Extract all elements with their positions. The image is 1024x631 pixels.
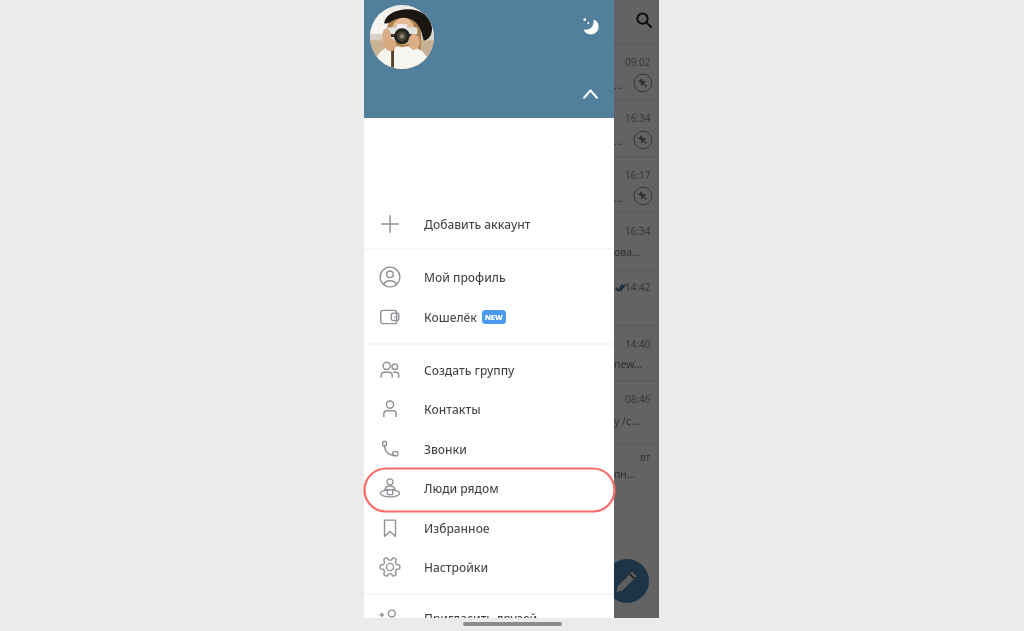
button[interactable]: Expand accounts (572, 76, 608, 112)
staticText: Создать группу (424, 362, 515, 378)
staticText: 16:34 (625, 111, 651, 125)
staticText: Люди рядом (424, 480, 499, 496)
button[interactable]: Звонки (364, 429, 614, 469)
staticText: NEW (485, 312, 503, 322)
button[interactable]: Добавить аккаунт (364, 204, 614, 244)
staticText: 08:46 (625, 392, 651, 406)
staticText: вт (640, 450, 651, 464)
staticText: у /с… (614, 414, 640, 428)
staticText: пн… (614, 467, 636, 481)
button[interactable]: New message (605, 559, 649, 603)
button[interactable]: Создать группу (364, 350, 614, 390)
staticText: … (614, 191, 623, 205)
button[interactable]: Night mode (571, 6, 607, 42)
staticText: 14:40 (625, 337, 651, 351)
staticText: Избранное (424, 520, 490, 536)
staticText: Кошелёк (424, 309, 477, 325)
staticText: Добавить аккаунт (424, 216, 531, 232)
staticText: 16:17 (625, 168, 651, 182)
button[interactable]: Контакты (364, 389, 614, 429)
button[interactable]: Люди рядом (364, 468, 614, 508)
staticText: ова… (614, 245, 641, 259)
staticText: Пригласить друзей (424, 610, 538, 618)
staticText: 09:02 (625, 55, 651, 69)
staticText: new… (614, 357, 643, 371)
staticText: Мой профиль (424, 269, 506, 285)
staticText: Звонки (424, 441, 467, 457)
button[interactable]: Избранное (364, 508, 614, 548)
staticText: Контакты (424, 401, 481, 417)
staticText: 14:42 (625, 280, 651, 294)
button[interactable]: Кошелёк (364, 297, 614, 337)
button[interactable]: Настройки (364, 547, 614, 587)
staticText: 16:34 (625, 224, 651, 238)
staticText: … (614, 134, 623, 148)
button[interactable]: Мой профиль (364, 257, 614, 297)
button[interactable]: Пригласить друзей (364, 598, 614, 618)
staticText: Настройки (424, 559, 489, 575)
staticText: … (614, 78, 623, 92)
